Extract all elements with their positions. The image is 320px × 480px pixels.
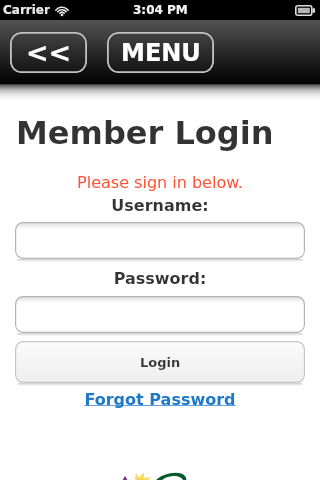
button[interactable]: Back [10, 32, 87, 73]
staticText: Member Login [16, 114, 274, 151]
staticText: Password: [0, 269, 320, 288]
staticText: << [26, 37, 72, 68]
staticText: Username: [0, 196, 320, 215]
staticText: Carrier [3, 3, 50, 17]
staticText: Please sign in below. [0, 173, 320, 192]
button[interactable]: MENU [107, 32, 214, 73]
staticText: 3:04 PM [133, 3, 188, 17]
staticText: Login [140, 355, 181, 370]
staticText: MENU [121, 39, 201, 67]
button[interactable]: Login [15, 341, 305, 383]
button[interactable]: Forgot Password [0, 390, 320, 409]
button[interactable] [15, 296, 305, 333]
button[interactable] [15, 222, 305, 259]
